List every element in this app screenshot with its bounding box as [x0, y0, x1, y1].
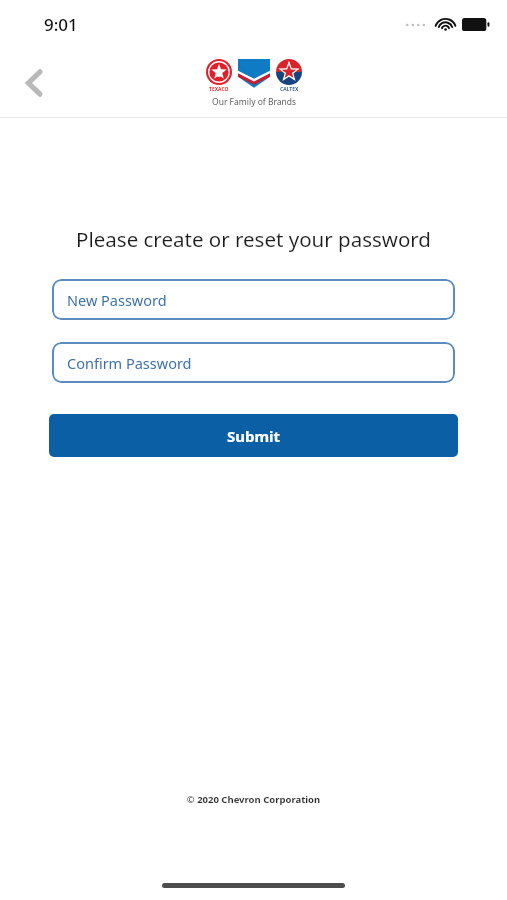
staticText: Please create or reset your password [0, 225, 507, 253]
button[interactable]: Confirm Password [52, 342, 455, 383]
button[interactable]: Submit [49, 414, 458, 457]
staticText: 9:01 [44, 13, 78, 36]
button[interactable]: Back [12, 61, 56, 105]
staticText: © 2020 Chevron Corporation [0, 793, 507, 806]
staticText: New Password [67, 290, 167, 310]
staticText: CALTEX [280, 86, 299, 93]
button[interactable]: New Password [52, 279, 455, 320]
staticText: Confirm Password [67, 353, 192, 373]
staticText: Submit [227, 426, 281, 446]
staticText: Our Family of Brands [212, 96, 297, 108]
staticText: TEXACO [209, 86, 229, 93]
